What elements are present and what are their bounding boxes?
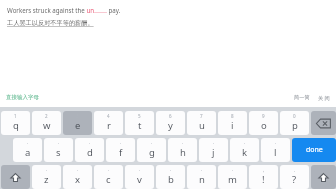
button[interactable]: 8 [218,111,247,135]
button[interactable]: Shift [1,165,30,189]
button[interactable]: 0 [280,111,309,135]
staticText: t [138,119,142,132]
staticText: ! [262,173,265,186]
staticText: b [168,173,174,186]
staticText: · [201,167,203,173]
staticText: 直接输入字母 [6,94,39,101]
staticText: · [275,140,277,146]
button[interactable]: · [125,165,154,189]
staticText: r [107,119,111,132]
staticText: d [87,146,93,159]
button[interactable]: · [32,165,61,189]
staticText: · [46,167,48,173]
button[interactable]: · [230,138,259,162]
button[interactable]: 5 [125,111,154,135]
staticText: · [120,140,122,146]
staticText: · [182,140,184,146]
staticText: c [106,173,111,186]
staticText: · [213,140,215,146]
staticText: u [199,119,205,132]
staticText: h [180,146,186,159]
staticText: g [149,146,155,159]
button[interactable]: · [156,165,185,189]
staticText: · [232,167,234,173]
staticText: 4 [107,113,110,119]
staticText: v [137,173,142,186]
button[interactable]: · [75,138,104,162]
button[interactable]: Shift [311,165,336,189]
staticText: x [75,173,81,186]
button[interactable]: · [94,165,123,189]
button[interactable]: 3 [63,111,92,135]
button[interactable]: 4 [94,111,123,135]
staticText: o [261,119,267,132]
staticText: · [139,167,141,173]
button[interactable]: · [261,138,290,162]
staticText: 8 [231,113,234,119]
button[interactable]: 2 [32,111,61,135]
button[interactable]: 1 [1,111,30,135]
button[interactable]: · [218,165,247,189]
staticText: f [119,146,123,159]
staticText: · [58,140,60,146]
staticText: j [212,146,215,159]
staticText: done [306,145,323,155]
staticText: ? [292,173,297,186]
staticText: · [27,140,29,146]
staticText: . [294,167,296,173]
staticText: 5 [138,113,141,119]
staticText: i [231,119,234,132]
button[interactable]: 9 [249,111,278,135]
staticText: 1 [14,113,17,119]
button[interactable]: · [44,138,73,162]
button[interactable]: . [280,165,309,189]
staticText: 0 [293,113,296,119]
staticText: z [44,173,49,186]
button[interactable]: done [292,138,336,162]
staticText: q [13,119,19,132]
button[interactable]: 关 闭 [318,94,330,101]
staticText: p [292,119,298,132]
staticText: a [25,146,31,159]
staticText: 9 [262,113,265,119]
button[interactable]: 7 [187,111,216,135]
staticText: 简一简 [294,94,310,101]
staticText: · [77,167,79,173]
button[interactable]: 6 [156,111,185,135]
button[interactable]: 直接输入字母 [6,94,39,101]
button[interactable]: · [199,138,228,162]
staticText: k [242,146,248,159]
staticText: Workers struck against the un pay. [7,6,121,14]
staticText: 工人罢工以反对不平等的薪酬。 [7,19,94,27]
staticText: 6 [169,113,172,119]
button[interactable]: Backspace [311,111,336,135]
button[interactable]: , [249,165,278,189]
staticText: 关 闭 [318,94,330,101]
staticText: w [43,119,51,132]
staticText: , [263,167,265,173]
staticText: s [56,146,61,159]
button[interactable]: · [106,138,135,162]
staticText: e [75,119,81,132]
staticText: n [199,173,205,186]
staticText: y [168,119,173,132]
staticText: m [228,173,237,186]
button[interactable]: · [63,165,92,189]
staticText: · [244,140,246,146]
button[interactable]: · [187,165,216,189]
staticText: l [274,146,277,159]
staticText: 2 [45,113,48,119]
staticText: · [108,167,110,173]
button[interactable]: · [168,138,197,162]
staticText: · [89,140,91,146]
button[interactable]: 简一简 [294,94,310,101]
button[interactable]: · [137,138,166,162]
button[interactable]: · [13,138,42,162]
staticText: · [170,167,172,173]
staticText: 7 [200,113,203,119]
staticText: · [151,140,153,146]
